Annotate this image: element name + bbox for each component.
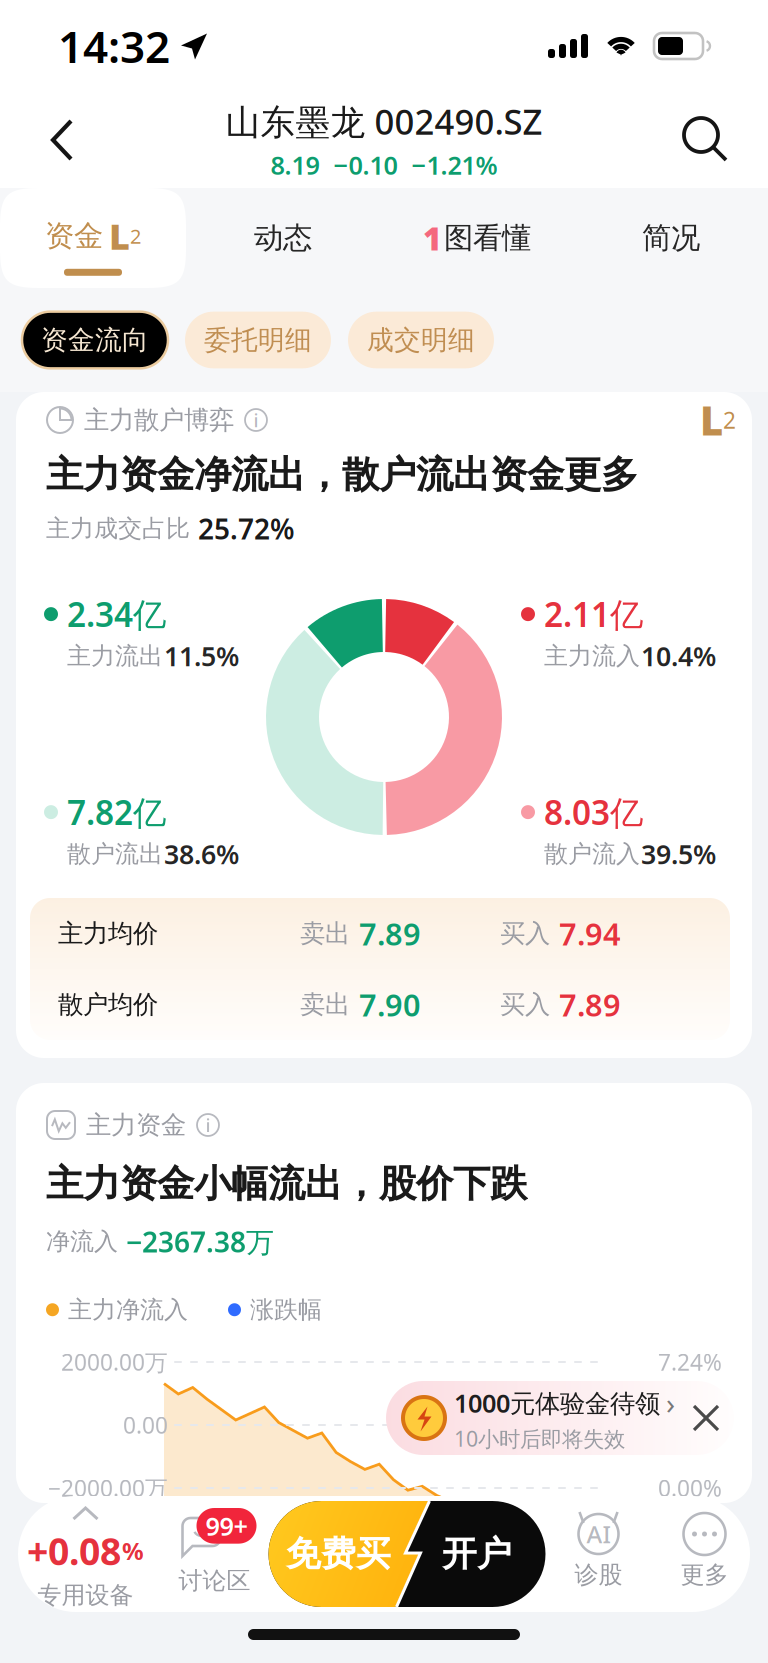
staticText: 主力资金小幅流出，股价下跌 <box>46 1161 527 1207</box>
staticText: 主力均价 <box>58 918 158 949</box>
staticText: L <box>700 393 723 446</box>
staticText: 资金 <box>45 218 103 254</box>
staticText: 2 <box>723 405 736 435</box>
staticText: 25.72% <box>198 510 295 547</box>
staticText: 免费买 <box>286 1533 391 1575</box>
staticText: 图看懂 <box>444 220 531 256</box>
staticText: 7.94 <box>559 913 621 954</box>
staticText: 7.82亿 <box>67 790 166 834</box>
staticText: 散户流出 <box>67 839 163 869</box>
staticText: 7.24% <box>658 1347 722 1377</box>
staticText: › <box>666 1383 675 1422</box>
button[interactable]: 1000元体验金待领 <box>386 1381 734 1455</box>
button[interactable]: 资金流向 <box>22 312 168 368</box>
staticText: 主力成交占比 <box>46 514 190 543</box>
staticText: 诊股 <box>574 1560 622 1589</box>
staticText: 7.89 <box>359 913 421 954</box>
staticText: 讨论区 <box>178 1566 250 1595</box>
staticText: i <box>253 408 258 432</box>
staticText: i <box>205 1113 210 1137</box>
staticText: −2367.38万 <box>126 1223 274 1260</box>
staticText: −2000.00万 <box>48 1473 168 1503</box>
staticText: 资金流向 <box>41 324 149 356</box>
button[interactable]: 1 <box>380 188 574 288</box>
staticText: 买入 <box>500 918 550 949</box>
staticText: 散户流入 <box>544 839 640 869</box>
staticText: % <box>122 1535 144 1567</box>
staticText: 主力流出 <box>67 641 163 671</box>
staticText: 7.90 <box>359 984 421 1025</box>
staticText: 卖出 <box>300 918 350 949</box>
staticText: 2000.00万 <box>61 1347 168 1377</box>
staticText: 动态 <box>254 220 312 256</box>
staticText: 专用设备 <box>37 1581 133 1610</box>
staticText: 39.5% <box>641 836 716 872</box>
staticText: 委托明细 <box>204 324 312 356</box>
staticText: 主力净流入 <box>68 1295 188 1324</box>
staticText: 10.4% <box>641 638 716 674</box>
staticText: 净流入 <box>46 1227 118 1256</box>
staticText: L <box>109 212 130 260</box>
button[interactable]: Search <box>670 104 742 176</box>
staticText: AI <box>586 1518 610 1550</box>
button[interactable]: 委托明细 <box>185 312 331 368</box>
staticText: 成交明细 <box>367 324 475 356</box>
staticText: 2.34亿 <box>67 592 166 636</box>
staticText: 主力散户博弈 <box>84 404 234 435</box>
button[interactable]: +0.08 <box>10 1496 160 1612</box>
button[interactable]: 资金 <box>0 188 186 288</box>
staticText: 99+ <box>205 1509 247 1543</box>
staticText: 8.03亿 <box>544 790 643 834</box>
staticText: 14:32 <box>58 17 170 75</box>
button[interactable]: AI <box>545 1496 651 1612</box>
staticText: +0.08 <box>27 1526 121 1576</box>
staticText: 2.11亿 <box>544 592 643 636</box>
staticText: 涨跌幅 <box>250 1295 322 1324</box>
staticText: 简况 <box>642 220 700 256</box>
staticText: 2 <box>130 223 141 249</box>
button[interactable]: 动态 <box>186 188 380 288</box>
staticText: 38.6% <box>164 836 239 872</box>
staticText: 7.89 <box>559 984 621 1025</box>
staticText: 0.00 <box>123 1410 168 1440</box>
staticText: 1000元体验金待领 <box>454 1386 660 1420</box>
staticText: 更多 <box>680 1560 728 1589</box>
button[interactable]: 免费买 <box>268 1501 545 1607</box>
staticText: 散户均价 <box>58 989 158 1020</box>
button[interactable]: Back <box>26 104 98 176</box>
button[interactable]: 成交明细 <box>348 312 494 368</box>
staticText: 11.5% <box>164 638 239 674</box>
staticText: 开户 <box>442 1533 512 1575</box>
staticText: 主力资金 <box>86 1109 186 1140</box>
button[interactable]: 更多 <box>651 1496 757 1612</box>
staticText: 主力流入 <box>544 641 640 671</box>
staticText: 主力资金净流出，散户流出资金更多 <box>46 452 638 498</box>
staticText: 卖出 <box>300 989 350 1020</box>
staticText: 10小时后即将失效 <box>454 1424 625 1453</box>
button[interactable]: 简况 <box>574 188 768 288</box>
staticText: 买入 <box>500 989 550 1020</box>
button[interactable]: 99+ <box>160 1496 268 1612</box>
staticText: 8.19 −0.10 −1.21% <box>270 148 497 182</box>
staticText: 山东墨龙 002490.SZ <box>225 98 542 144</box>
staticText: 1 <box>423 217 442 259</box>
staticText: 0.00% <box>658 1473 722 1503</box>
